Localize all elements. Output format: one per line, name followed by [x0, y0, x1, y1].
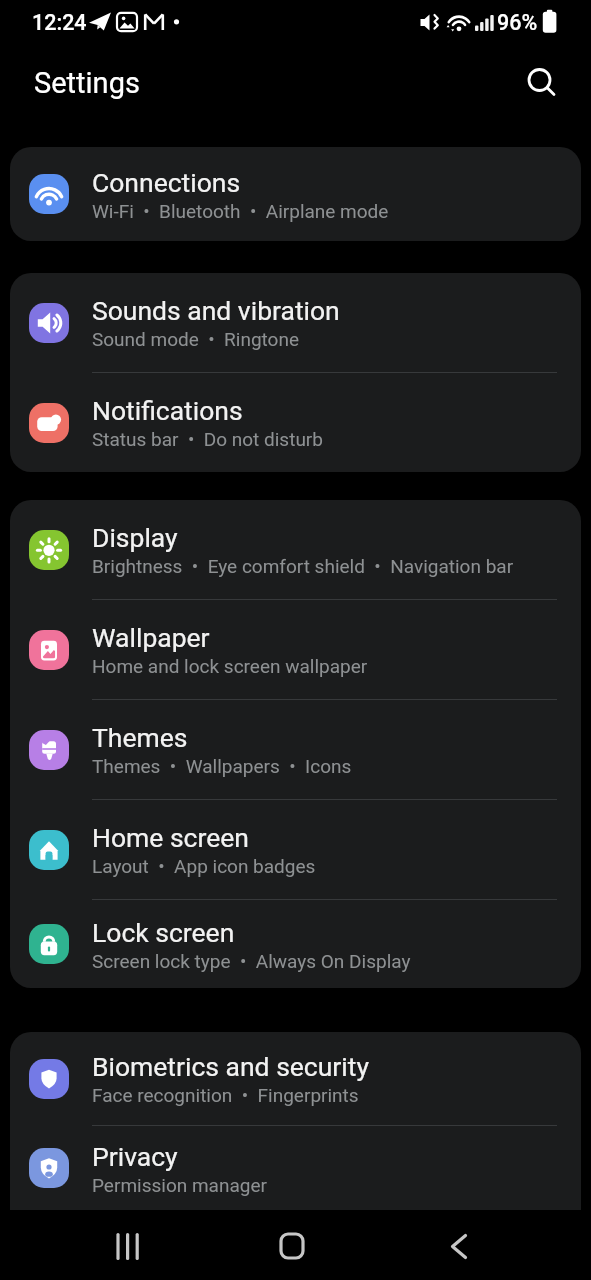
button[interactable]: Display — [10, 500, 581, 599]
staticText: Lock screen — [92, 917, 235, 948]
staticText: Face recognition • Fingerprints — [92, 1084, 359, 1106]
staticText: Sound mode • Ringtone — [92, 328, 299, 350]
staticText: Status bar • Do not disturb — [92, 428, 323, 450]
button[interactable]: Notifications — [10, 373, 581, 472]
button[interactable]: Themes — [10, 700, 581, 799]
staticText: Notifications — [92, 395, 243, 426]
button[interactable] — [0, 1210, 197, 1280]
button[interactable] — [394, 1210, 591, 1280]
staticText: Brightness • Eye comfort shield • Naviga… — [92, 555, 514, 577]
staticText: Sounds and vibration — [92, 295, 340, 326]
button[interactable]: Lock screen — [10, 900, 581, 988]
staticText: Home screen — [92, 822, 249, 853]
staticText: Privacy — [92, 1141, 178, 1172]
button[interactable]: Biometrics and security — [10, 1032, 581, 1125]
staticText: Biometrics and security — [92, 1051, 369, 1082]
staticText: Display — [92, 522, 178, 553]
staticText: Home and lock screen wallpaper — [92, 655, 368, 677]
staticText: Wallpaper — [92, 622, 210, 653]
staticText: Themes • Wallpapers • Icons — [92, 755, 352, 777]
staticText: Connections — [92, 167, 241, 198]
button[interactable]: Home screen — [10, 800, 581, 899]
staticText: Permission manager — [92, 1174, 267, 1196]
staticText: Layout • App icon badges — [92, 855, 316, 877]
staticText: Themes — [92, 722, 188, 753]
staticText: 12:24 — [32, 10, 87, 35]
button[interactable] — [516, 56, 566, 106]
button[interactable]: Wallpaper — [10, 600, 581, 699]
button[interactable]: Sounds and vibration — [10, 273, 581, 372]
button[interactable] — [197, 1210, 394, 1280]
staticText: Wi-Fi • Bluetooth • Airplane mode — [92, 200, 389, 222]
staticText: Screen lock type • Always On Display — [92, 950, 411, 972]
button[interactable]: Privacy — [10, 1126, 581, 1210]
staticText: Settings — [34, 66, 140, 100]
button[interactable]: Connections — [10, 147, 581, 241]
staticText: 96% — [497, 10, 538, 35]
